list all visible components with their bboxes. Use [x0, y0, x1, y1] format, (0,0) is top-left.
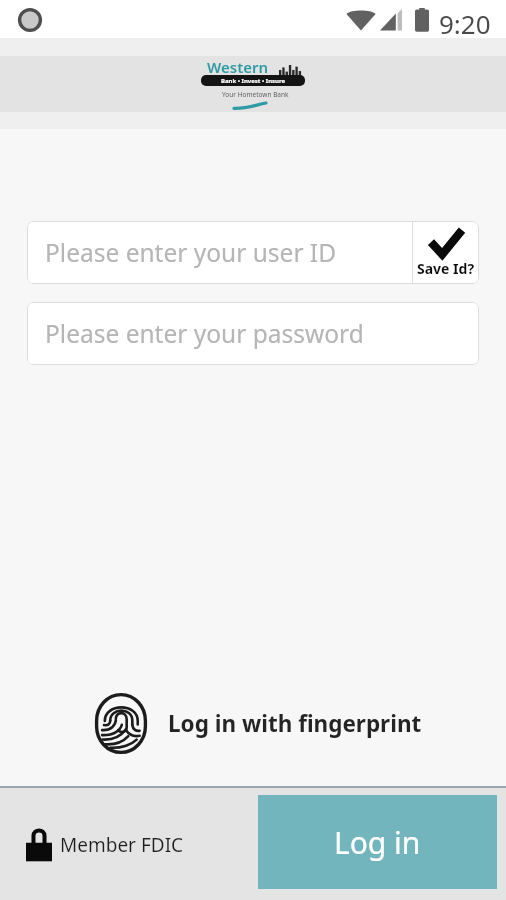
staticText: 9:20	[439, 6, 491, 36]
button[interactable]: Save Id	[413, 221, 479, 284]
staticText: Bank • Invest • Insure	[221, 77, 286, 85]
staticText: Log in with fingerprint	[168, 708, 422, 739]
staticText: Western	[207, 57, 269, 77]
button[interactable]: Log in with fingerprint	[9, 692, 506, 755]
staticText: Please enter your user ID	[45, 236, 337, 269]
staticText: Member FDIC	[60, 832, 184, 858]
button[interactable]: Please enter your password	[27, 302, 479, 365]
button[interactable]: Log in	[258, 795, 497, 889]
staticText: Save Id?	[417, 259, 475, 278]
staticText: Please enter your password	[45, 317, 364, 350]
button[interactable]: Please enter your user ID	[27, 221, 412, 284]
staticText: Log in	[334, 822, 421, 863]
button[interactable]: Member FDIC	[26, 827, 184, 862]
staticText: Your Hometown Bank	[222, 90, 289, 99]
